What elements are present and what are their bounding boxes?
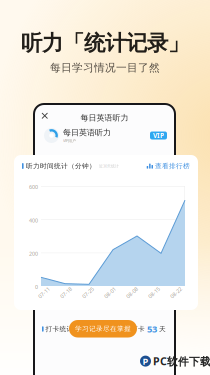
staticText: 每日学习情况一目了然 — [50, 61, 160, 74]
staticText: 53 — [145, 323, 159, 335]
button[interactable]: Close — [39, 110, 50, 121]
staticText: 听力「统计记录」 — [21, 30, 189, 56]
staticText: 07-18 — [59, 289, 73, 296]
staticText: 400 — [29, 217, 38, 224]
staticText: PC软件下载 — [153, 354, 210, 368]
staticText: 08-22 — [169, 289, 183, 296]
staticText: 每日英语听力 — [80, 113, 128, 123]
button[interactable]: VIP — [150, 131, 167, 139]
staticText: 天 — [159, 325, 166, 333]
staticText: 查看排行榜 — [155, 162, 190, 170]
staticText: 每日英语听力 — [63, 128, 111, 137]
staticText: 200 — [29, 250, 38, 257]
staticText: 08-15 — [147, 289, 161, 296]
staticText: 08-08 — [125, 289, 139, 296]
staticText: P — [142, 355, 148, 367]
staticText: 600 — [29, 183, 38, 191]
staticText: 打卡统计 — [46, 325, 74, 333]
staticText: 听力时间统计（分钟） — [26, 162, 96, 170]
staticText: 08-01 — [103, 289, 117, 296]
staticText: 打卡 — [131, 325, 145, 333]
button[interactable]: 查看排行榜 — [147, 162, 190, 170]
staticText: 学习记录尽在掌握 — [75, 325, 131, 333]
staticText: 07-25 — [81, 289, 95, 296]
staticText: VIP用户 — [63, 138, 76, 143]
staticText: 近30天统计 — [99, 163, 119, 169]
staticText: 0 — [35, 283, 38, 290]
staticText: 07-11 — [37, 289, 51, 296]
staticText: VIP — [153, 131, 164, 140]
